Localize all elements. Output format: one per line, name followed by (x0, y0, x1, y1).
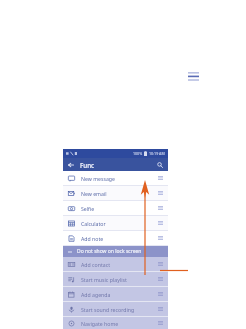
button[interactable]: Add contact (63, 257, 168, 271)
button[interactable]: Search (156, 161, 164, 169)
staticText: Add note (81, 235, 158, 242)
staticText: Do not show on lock screen (77, 248, 142, 255)
staticText: Add contact (81, 261, 158, 268)
button[interactable]: Start sound recording (63, 302, 168, 316)
button[interactable]: Add note (63, 231, 168, 245)
button[interactable]: Menu (186, 69, 200, 83)
staticText: Start sound recording (81, 306, 158, 313)
staticText: Func (80, 161, 95, 169)
staticText: Start music playlist (81, 276, 158, 283)
button[interactable]: New message (63, 171, 168, 185)
staticText: Navigate home (81, 320, 158, 327)
staticText: Selfie (81, 205, 158, 212)
staticText: Add agenda (81, 291, 158, 298)
staticText: 10:19 AM (149, 151, 165, 156)
button[interactable]: New email (63, 186, 168, 200)
button[interactable]: Selfie (63, 201, 168, 215)
staticText: New message (81, 175, 158, 182)
button[interactable]: Add agenda (63, 287, 168, 301)
button[interactable]: Back (67, 161, 75, 169)
button[interactable]: Start music playlist (63, 272, 168, 286)
staticText: 100% (133, 151, 143, 156)
staticText: New email (81, 190, 158, 197)
button[interactable]: Calculator (63, 216, 168, 230)
staticText: Calculator (81, 220, 158, 227)
button[interactable]: Navigate home (63, 317, 168, 329)
